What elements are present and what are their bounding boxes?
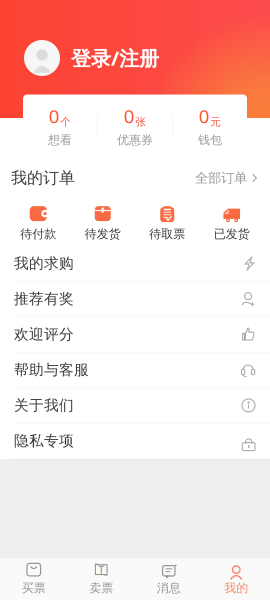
staticText: 0	[49, 104, 60, 128]
staticText: 推荐有奖	[14, 290, 74, 308]
staticText: 钱包	[198, 132, 222, 147]
staticText: 张	[135, 115, 146, 128]
staticText: 待发货	[85, 227, 121, 241]
staticText: 元	[210, 115, 221, 128]
button[interactable]: 0	[173, 104, 247, 147]
staticText: 想看	[48, 132, 72, 147]
staticText: 欢迎评分	[14, 325, 74, 343]
staticText: 0	[124, 104, 135, 128]
button[interactable]: 消息	[135, 563, 202, 595]
button[interactable]: 关于我们	[0, 388, 270, 423]
staticText: 隐私专项	[14, 432, 74, 450]
staticText: 登录/注册	[71, 45, 159, 71]
staticText: 我的求购	[14, 254, 74, 272]
staticText: 卖票	[89, 581, 113, 595]
staticText: 0	[199, 104, 210, 128]
button[interactable]: 待付款	[6, 201, 70, 241]
staticText: 个	[60, 115, 71, 128]
staticText: 买票	[22, 581, 46, 595]
staticText: 我的订单	[11, 168, 75, 188]
button[interactable]: T	[67, 563, 135, 595]
button[interactable]: 0	[98, 104, 172, 147]
staticText: 优惠券	[117, 132, 153, 147]
button[interactable]: 推荐有奖	[0, 281, 270, 317]
button[interactable]: 欢迎评分	[0, 317, 270, 352]
staticText: 我的	[224, 581, 248, 595]
staticText: 帮助与客服	[14, 361, 89, 379]
button[interactable]: 登录/注册	[0, 31, 270, 85]
staticText: 消息	[157, 581, 181, 595]
button[interactable]: 我的求购	[0, 246, 270, 281]
staticText: 全部订单	[195, 170, 247, 186]
button[interactable]: 隐私专项	[0, 423, 270, 459]
button[interactable]: 我的	[202, 563, 270, 595]
button[interactable]: 0	[23, 104, 97, 147]
button[interactable]: 待取票	[135, 201, 199, 241]
button[interactable]: 我的订单	[0, 160, 270, 196]
staticText: 已发货	[214, 227, 250, 241]
button[interactable]: 买票	[0, 563, 67, 595]
staticText: 待取票	[149, 227, 185, 241]
button[interactable]: 待发货	[70, 201, 135, 241]
staticText: T	[98, 562, 104, 577]
staticText: 待付款	[20, 227, 56, 241]
button[interactable]: 已发货	[199, 201, 264, 241]
staticText: 关于我们	[14, 396, 74, 414]
button[interactable]: 帮助与客服	[0, 352, 270, 388]
